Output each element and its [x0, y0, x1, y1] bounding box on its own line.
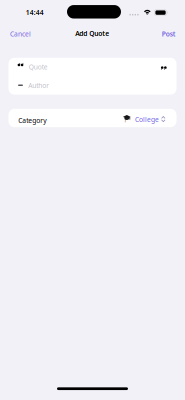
staticText: Post: [162, 30, 176, 38]
button[interactable]: Quote: [0, 0, 185, 400]
button[interactable]: Author: [0, 0, 185, 400]
staticText: Category: [18, 116, 46, 125]
button[interactable]: Post: [158, 25, 180, 43]
staticText: 14:44: [26, 8, 44, 17]
staticText: Add Quote: [75, 29, 109, 38]
staticText: Cancel: [10, 30, 31, 38]
button[interactable]: Cancel: [6, 25, 35, 43]
staticText: College: [135, 115, 159, 124]
staticText: Author: [28, 81, 49, 90]
staticText: Quote: [29, 62, 48, 71]
button[interactable]: Category: [0, 0, 185, 400]
